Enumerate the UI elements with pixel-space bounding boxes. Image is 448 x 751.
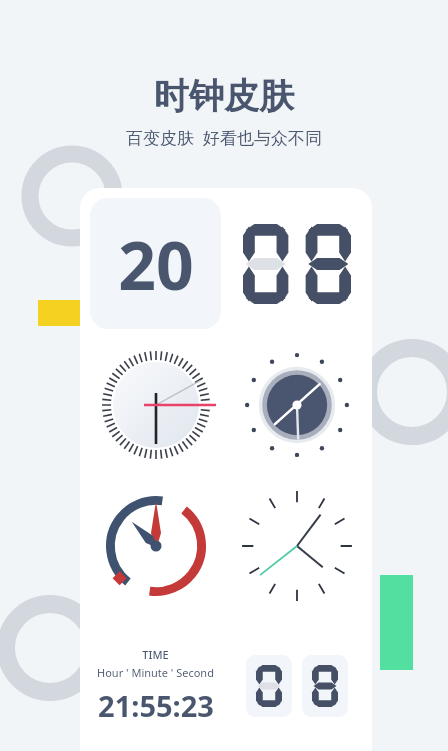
button[interactable]: Segment clock skin (231, 198, 362, 329)
button[interactable]: Stopwatch clock skin (90, 339, 221, 470)
button[interactable]: Flip clock skin (90, 198, 221, 329)
button[interactable]: Digital time skin (90, 621, 221, 751)
button[interactable]: Ring clock skin (90, 480, 221, 611)
button[interactable]: Minimal clock skin (231, 480, 362, 611)
staticText: TIME (142, 647, 169, 662)
staticText: 百变皮肤 好看也与众不同 (126, 126, 322, 149)
staticText: Hour ' Minute ' Second (97, 665, 214, 680)
staticText: 时钟皮肤 (154, 74, 294, 118)
button[interactable]: Boxed segment skin (231, 621, 362, 751)
staticText: 21:55:23 (98, 686, 214, 725)
staticText: 20 (118, 219, 194, 309)
button[interactable]: Dark dial clock skin (231, 339, 362, 470)
